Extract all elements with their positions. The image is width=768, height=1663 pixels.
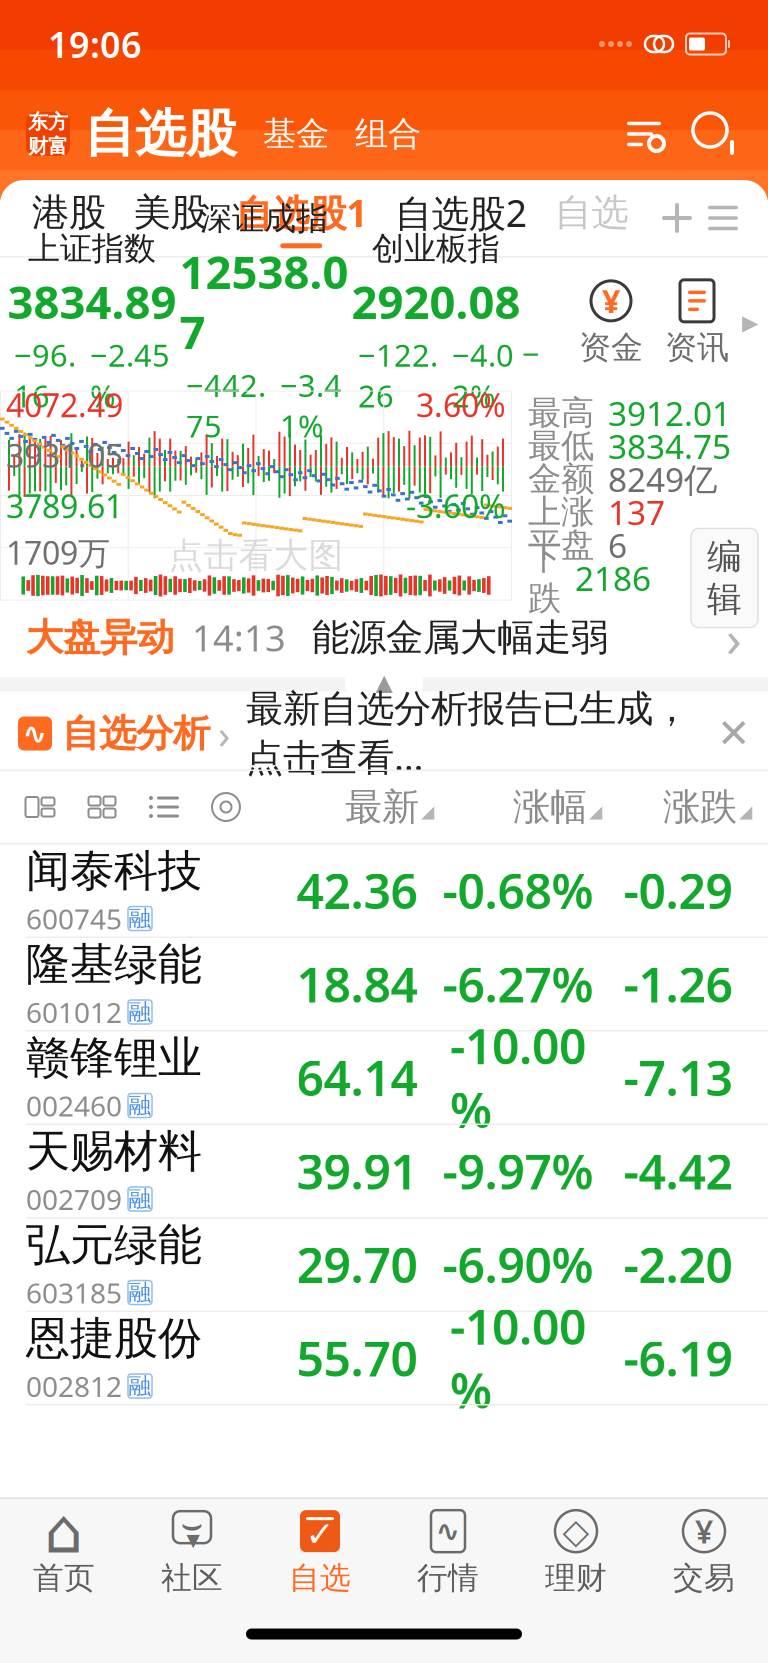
staticText: 002460	[26, 1087, 122, 1124]
staticText: 能源金属大幅走弱	[312, 615, 608, 660]
staticText: -10.00%	[450, 1294, 586, 1422]
staticText: 2186	[575, 556, 651, 600]
button[interactable]: ∿	[384, 1500, 512, 1604]
staticText: 闻泰科技	[26, 844, 202, 898]
button[interactable]: ✓	[256, 1500, 384, 1604]
staticText: 富	[48, 134, 68, 159]
button[interactable]: 搜索	[666, 110, 738, 158]
button[interactable]: 自定义	[208, 791, 244, 823]
staticText: 自选分析	[62, 711, 210, 756]
button[interactable]: 赣锋锂业	[0, 1031, 768, 1125]
button[interactable]: 天赐材料	[0, 1125, 768, 1218]
button[interactable]: ¥	[568, 278, 654, 367]
staticText: 组合	[355, 113, 421, 154]
staticText: 编辑	[707, 535, 742, 621]
button[interactable]: 美股	[132, 190, 210, 246]
button[interactable]: 双列视图	[22, 791, 58, 823]
staticText: 最新自选分析报告已生成，点击查看…	[246, 686, 690, 781]
button[interactable]: 涨跌	[602, 784, 752, 830]
button[interactable]: 编辑	[691, 528, 758, 628]
staticText: 最低	[528, 425, 594, 466]
staticText: ∿	[22, 717, 47, 750]
button[interactable]: 资讯	[654, 278, 740, 367]
button[interactable]: 恩捷股份	[0, 1312, 768, 1405]
staticText: 自选	[289, 1559, 351, 1597]
staticText: ▲	[375, 670, 392, 695]
staticText: 涨幅	[513, 784, 587, 830]
staticText: 12538.07	[179, 241, 348, 362]
staticText: 自选股2	[395, 188, 527, 237]
staticText: 上涨	[528, 491, 594, 532]
button[interactable]: 闻泰科技	[0, 844, 768, 938]
button[interactable]: 深证成指	[178, 199, 350, 446]
staticText: ✓	[305, 1514, 334, 1554]
button[interactable]: ⌣	[128, 1500, 256, 1604]
button[interactable]: ∿	[18, 686, 690, 781]
button[interactable]: 分组管理	[700, 195, 746, 241]
button[interactable]: 收起	[345, 671, 423, 693]
button[interactable]: 隆基绿能	[0, 938, 768, 1031]
staticText: 方	[48, 109, 68, 134]
staticText: 平盘	[528, 524, 594, 565]
button[interactable]: 上证指数	[6, 229, 178, 416]
staticText: -6.27%	[442, 952, 593, 1016]
staticText: 理财	[545, 1559, 607, 1597]
staticText: -6.19	[623, 1326, 732, 1390]
button[interactable]: ◇	[512, 1500, 640, 1604]
button[interactable]: ¥	[640, 1500, 768, 1604]
button[interactable]: 最新	[284, 784, 434, 830]
button[interactable]: 自选股2	[393, 188, 529, 248]
staticText: 融	[128, 1372, 151, 1400]
staticText: ▶	[742, 310, 758, 335]
button[interactable]: 大盘异动	[0, 603, 768, 671]
button[interactable]: ⌂	[0, 1500, 128, 1604]
staticText: 深证成指	[200, 199, 328, 238]
staticText: −	[522, 333, 540, 374]
staticText: 资金	[579, 328, 643, 367]
staticText: -1.26	[623, 952, 732, 1016]
button[interactable]: 上证指数分时图	[0, 390, 512, 600]
button[interactable]: 管理自选	[622, 114, 666, 154]
staticText: 融	[128, 1279, 151, 1306]
button[interactable]: 港股	[30, 190, 108, 246]
staticText: ⌣	[180, 1508, 203, 1542]
staticText: 6	[608, 523, 627, 567]
staticText: 601012	[26, 993, 122, 1031]
staticText: -0.68%	[442, 859, 593, 922]
button[interactable]: 组合	[329, 113, 421, 154]
button[interactable]: 自选股1	[233, 188, 369, 248]
staticText: 恩捷股份	[26, 1311, 202, 1365]
staticText: 2920.08	[351, 271, 520, 331]
staticText: ›	[218, 707, 230, 760]
button[interactable]: 添加分组	[654, 195, 700, 241]
button[interactable]: 列表视图	[146, 791, 182, 823]
staticText: 最新	[345, 784, 419, 830]
staticText: −2.45%	[90, 334, 170, 416]
staticText: 财	[28, 134, 48, 159]
staticText: 涨跌	[663, 784, 737, 830]
staticText: 42.36	[296, 859, 417, 922]
button[interactable]: 关闭	[710, 709, 758, 757]
button[interactable]: 自选	[552, 190, 630, 246]
button[interactable]: 弘元绿能	[0, 1218, 768, 1312]
staticText: 赣锋锂业	[26, 1031, 202, 1085]
staticText: -4.42	[623, 1139, 732, 1203]
button[interactable]: 创业板指	[350, 229, 522, 416]
staticText: 14:13	[192, 614, 286, 661]
staticText: 自选股1	[235, 188, 367, 237]
staticText: 基金	[263, 113, 329, 154]
button[interactable]: 涨幅	[434, 784, 602, 830]
staticText: 下跌	[528, 537, 561, 619]
staticText: −96.16	[14, 334, 76, 416]
staticText: 隆基绿能	[26, 937, 202, 991]
staticText: 创业板指	[372, 229, 500, 268]
button[interactable]: 网格视图	[84, 791, 120, 823]
staticText: 东	[28, 109, 48, 134]
staticText: 首页	[33, 1559, 95, 1597]
button[interactable]: 基金	[237, 113, 329, 154]
button[interactable]: 东方财富	[26, 112, 70, 156]
button[interactable]: 自选股	[70, 103, 237, 165]
staticText: 8249亿	[608, 457, 717, 501]
staticText: 3789.61	[6, 484, 123, 527]
staticText: ¥	[695, 1510, 713, 1552]
